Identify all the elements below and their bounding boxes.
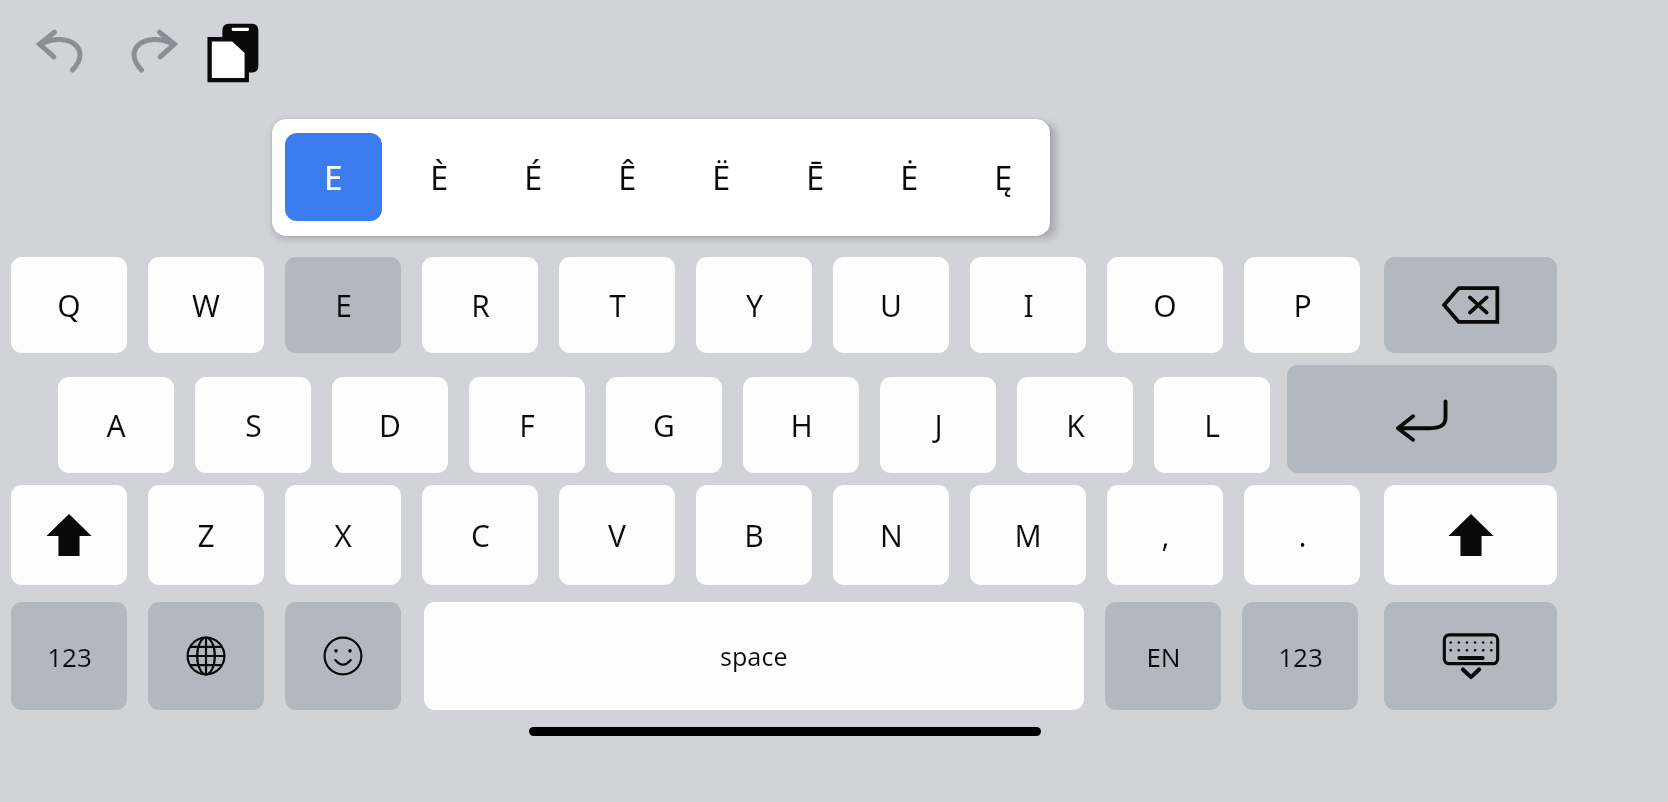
button[interactable]: Ê (580, 133, 674, 221)
staticText: Y (746, 285, 763, 326)
button[interactable]: É (486, 133, 580, 221)
button[interactable]: EN (1105, 602, 1221, 710)
staticText: Q (57, 285, 81, 326)
staticText: V (608, 515, 626, 556)
staticText: R (471, 285, 490, 326)
button[interactable]: 123 (11, 602, 127, 710)
button[interactable]: R (422, 257, 538, 353)
staticText: Ę (994, 155, 1013, 200)
staticText: I (1023, 285, 1034, 326)
button[interactable]: Shift (1384, 485, 1557, 585)
button[interactable]: U (833, 257, 949, 353)
staticText: Ë (712, 155, 731, 200)
button[interactable]: P (1244, 257, 1360, 353)
button[interactable]: D (332, 377, 448, 473)
staticText: F (519, 405, 535, 446)
staticText: X (334, 515, 352, 556)
button[interactable]: Ë (674, 133, 768, 221)
button[interactable]: È (392, 133, 486, 221)
staticText: A (106, 405, 126, 446)
staticText: J (934, 405, 943, 446)
button[interactable]: Undo (34, 22, 96, 82)
button[interactable]: Change language (148, 602, 264, 710)
staticText: D (379, 405, 401, 446)
button[interactable]: Q (11, 257, 127, 353)
button[interactable]: E (285, 257, 401, 353)
button[interactable]: Enter (1287, 365, 1557, 473)
button[interactable]: Paste (205, 20, 263, 84)
staticText: M (1014, 515, 1042, 556)
button[interactable]: H (743, 377, 859, 473)
button[interactable]: O (1107, 257, 1223, 353)
staticText: N (880, 515, 903, 556)
button[interactable]: B (696, 485, 812, 585)
staticText: W (192, 285, 220, 326)
button[interactable]: , (1107, 485, 1223, 585)
staticText: C (471, 515, 490, 556)
staticText: L (1204, 405, 1220, 446)
staticText: . (1298, 515, 1307, 556)
staticText: U (880, 285, 902, 326)
button[interactable]: A (58, 377, 174, 473)
button[interactable]: J (880, 377, 996, 473)
staticText: É (524, 155, 543, 200)
button[interactable]: Ę (956, 133, 1050, 221)
staticText: È (430, 155, 449, 200)
button[interactable]: Ė (862, 133, 956, 221)
button[interactable]: Backspace (1384, 257, 1557, 353)
button[interactable]: Z (148, 485, 264, 585)
staticText: E (324, 155, 343, 200)
staticText: S (245, 405, 262, 446)
staticText: K (1066, 405, 1085, 446)
button[interactable]: M (970, 485, 1086, 585)
staticText: 123 (47, 639, 92, 674)
button[interactable]: space (424, 602, 1084, 710)
button[interactable]: F (469, 377, 585, 473)
button[interactable]: Ē (768, 133, 862, 221)
button[interactable]: K (1017, 377, 1133, 473)
button[interactable]: E (285, 133, 382, 221)
staticText: B (744, 515, 764, 556)
staticText: G (653, 405, 675, 446)
button[interactable]: Shift (11, 485, 127, 585)
staticText: P (1293, 285, 1312, 326)
staticText: Ė (900, 155, 919, 200)
staticText: EN (1146, 639, 1181, 674)
button[interactable]: V (559, 485, 675, 585)
staticText: Z (197, 515, 215, 556)
button[interactable]: Y (696, 257, 812, 353)
staticText: O (1153, 285, 1177, 326)
button[interactable]: N (833, 485, 949, 585)
button[interactable]: X (285, 485, 401, 585)
button[interactable]: L (1154, 377, 1270, 473)
staticText: Ê (618, 155, 637, 200)
button[interactable]: Emoji (285, 602, 401, 710)
button[interactable]: C (422, 485, 538, 585)
staticText: H (790, 405, 813, 446)
button[interactable]: G (606, 377, 722, 473)
button[interactable]: . (1244, 485, 1360, 585)
button[interactable]: 123 (1242, 602, 1358, 710)
staticText: 123 (1278, 639, 1323, 674)
button[interactable]: S (195, 377, 311, 473)
staticText: T (609, 285, 626, 326)
button[interactable]: W (148, 257, 264, 353)
button[interactable]: T (559, 257, 675, 353)
staticText: Ē (806, 155, 825, 200)
button[interactable]: Redo (118, 22, 180, 82)
staticText: , (1161, 515, 1170, 556)
staticText: space (720, 639, 788, 673)
button[interactable]: Hide keyboard (1384, 602, 1557, 710)
staticText: E (335, 285, 352, 326)
button[interactable]: I (970, 257, 1086, 353)
